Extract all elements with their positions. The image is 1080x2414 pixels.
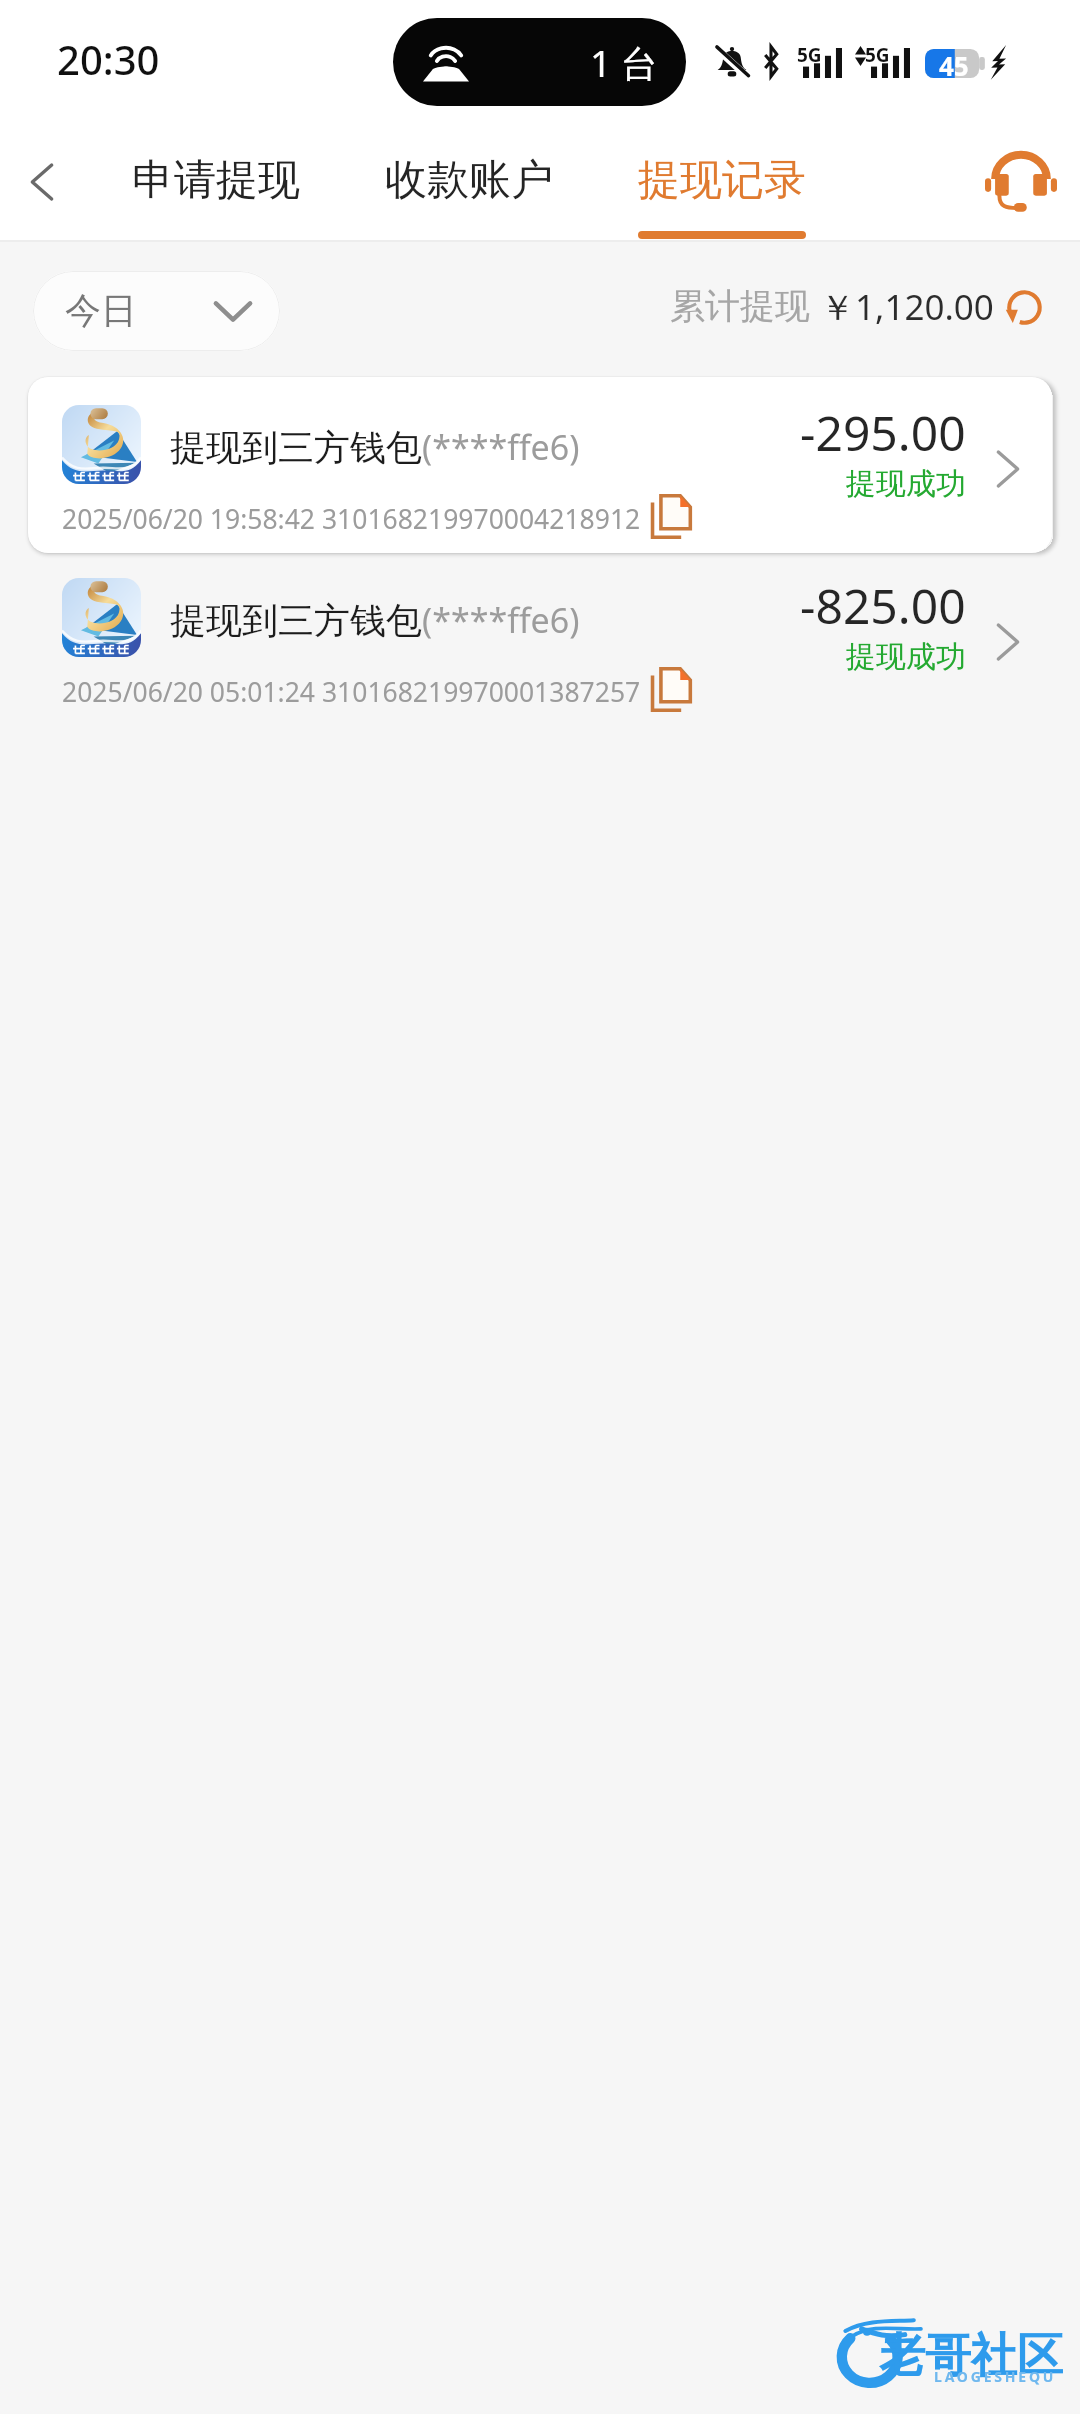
staticText: 收款账户 (385, 154, 553, 207)
staticText: -295.00 (800, 400, 966, 465)
button[interactable]: Copy (650, 493, 692, 540)
button[interactable]: 收款账户 (385, 122, 553, 242)
button[interactable]: Copy (650, 666, 692, 713)
staticText: 提现成功 (846, 465, 966, 503)
staticText: 提现记录 (638, 154, 806, 207)
staticText: 1 台 (590, 37, 658, 88)
staticText: LAOGESHEQU (934, 2367, 1057, 2386)
button[interactable]: 申请提现 (132, 122, 300, 242)
staticText: 5G (797, 42, 822, 68)
staticText: 累计提现 (670, 284, 810, 328)
button[interactable]: Refresh (1005, 288, 1044, 327)
button[interactable]: Back (0, 122, 110, 242)
staticText: 45 (939, 48, 969, 77)
staticText: -825.00 (800, 573, 966, 638)
staticText: 申请提现 (132, 154, 300, 207)
staticText: 5G (865, 42, 890, 68)
staticText: ￥1,120.00 (820, 283, 994, 331)
staticText: 提现到三方钱包(****ffe6) (170, 597, 580, 644)
staticText: 老哥社区 (879, 2327, 1063, 2385)
button[interactable]: 提现到三方钱包(****ffe6) (28, 377, 1052, 553)
staticText: 提现成功 (846, 638, 966, 676)
button[interactable]: 提现记录 (638, 122, 806, 242)
button[interactable]: Customer service (968, 122, 1074, 242)
staticText: 2025/06/20 19:58:42 31016821997000421891… (62, 501, 641, 537)
button[interactable]: 今日 (33, 271, 280, 351)
staticText: 提现到三方钱包(****ffe6) (170, 424, 580, 471)
staticText: 20:30 (57, 32, 160, 86)
staticText: 今日 (65, 288, 137, 333)
button[interactable]: 提现到三方钱包(****ffe6) (28, 550, 1052, 726)
staticText: 2025/06/20 05:01:24 31016821997000138725… (62, 674, 641, 710)
